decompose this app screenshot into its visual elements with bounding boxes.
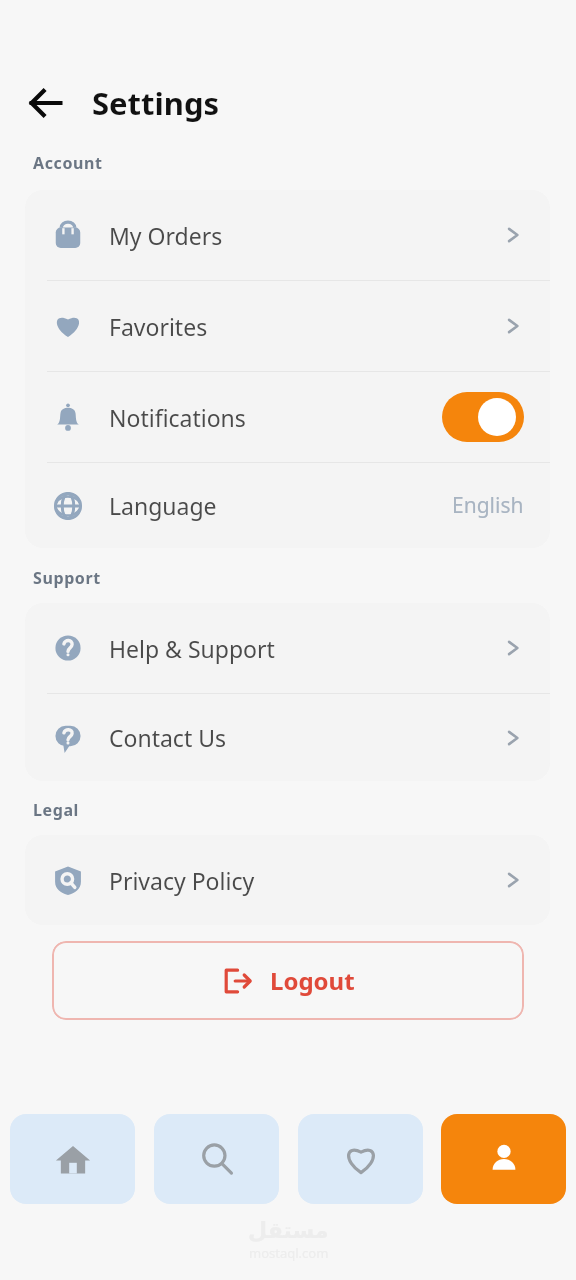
button[interactable]: Notifications toggle bbox=[442, 392, 524, 442]
staticText: My Orders bbox=[109, 220, 223, 251]
staticText: Contact Us bbox=[109, 722, 227, 753]
staticText: Language bbox=[109, 490, 217, 521]
staticText: English bbox=[452, 491, 524, 520]
staticText: Settings bbox=[92, 82, 220, 124]
button[interactable]: Favorites bbox=[25, 281, 550, 371]
button[interactable]: Language bbox=[25, 463, 550, 548]
staticText: Support bbox=[33, 567, 101, 589]
button[interactable]: Notifications bbox=[25, 372, 550, 462]
button[interactable]: Contact Us bbox=[25, 694, 550, 781]
staticText: Legal bbox=[33, 799, 79, 821]
button[interactable]: Home bbox=[10, 1114, 135, 1204]
staticText: Account bbox=[33, 152, 103, 174]
button[interactable]: Logout bbox=[52, 941, 524, 1020]
staticText: mostaql.com bbox=[249, 1244, 329, 1262]
button[interactable]: Help & Support bbox=[25, 603, 550, 693]
button[interactable]: Profile bbox=[441, 1114, 566, 1204]
button[interactable]: Favorites bbox=[298, 1114, 423, 1204]
button[interactable]: Back bbox=[22, 79, 70, 127]
button[interactable]: Privacy Policy bbox=[25, 835, 550, 925]
button[interactable]: My Orders bbox=[25, 190, 550, 280]
staticText: Notifications bbox=[109, 402, 246, 433]
staticText: Privacy Policy bbox=[109, 865, 255, 896]
staticText: مستقل bbox=[248, 1218, 329, 1244]
staticText: Logout bbox=[270, 964, 355, 997]
staticText: Help & Support bbox=[109, 633, 275, 664]
staticText: Favorites bbox=[109, 311, 208, 342]
button[interactable]: Search bbox=[154, 1114, 279, 1204]
